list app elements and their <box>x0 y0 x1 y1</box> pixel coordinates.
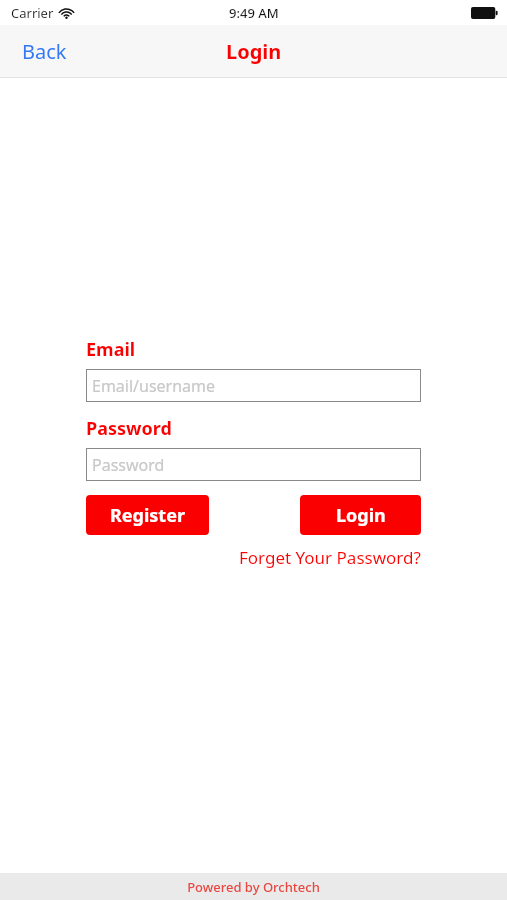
staticText: Email <box>86 337 136 362</box>
staticText: Password <box>92 454 165 476</box>
staticText: Register <box>110 503 185 528</box>
other: Battery full <box>471 7 498 19</box>
staticText: Login <box>336 503 386 528</box>
staticText: Forget Your Password? <box>239 546 421 569</box>
button[interactable]: Register <box>86 495 209 535</box>
staticText: Password <box>86 416 172 441</box>
button[interactable]: Forget Your Password? <box>239 546 421 569</box>
staticText: Powered by Orchtech <box>187 878 320 896</box>
staticText: 9:49 AM <box>229 4 279 22</box>
staticText: Login <box>226 38 282 65</box>
button[interactable]: Login <box>300 495 421 535</box>
staticText: Carrier <box>11 4 54 22</box>
button[interactable]: Email/username <box>86 369 421 402</box>
staticText: Back <box>22 38 67 65</box>
button[interactable]: Password <box>86 448 421 481</box>
staticText: Email/username <box>92 375 216 397</box>
button[interactable]: Back <box>14 32 75 71</box>
other: Wi-Fi signal <box>59 8 74 19</box>
